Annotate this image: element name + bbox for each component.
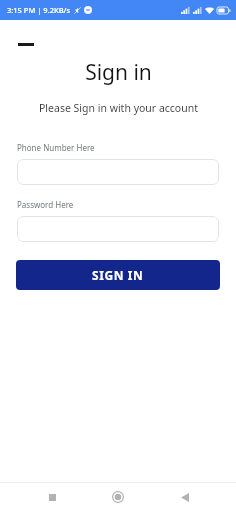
staticText: SIGN IN <box>92 267 144 283</box>
button[interactable]: Phone Number Here <box>17 159 219 185</box>
button[interactable]: Password Here <box>17 216 219 242</box>
staticText: Phone Number Here <box>17 142 95 153</box>
staticText: Please Sign in with your account <box>39 101 198 115</box>
button[interactable]: Back <box>170 482 200 512</box>
staticText: Sign in <box>85 58 152 87</box>
button[interactable]: Home <box>103 482 133 512</box>
button[interactable]: Recents <box>37 482 67 512</box>
button[interactable]: SIGN IN <box>16 260 220 290</box>
staticText: Password Here <box>17 199 74 210</box>
button[interactable]: Menu <box>12 34 40 54</box>
staticText: 3:15 PM | 9.2KB/s <box>7 5 71 15</box>
